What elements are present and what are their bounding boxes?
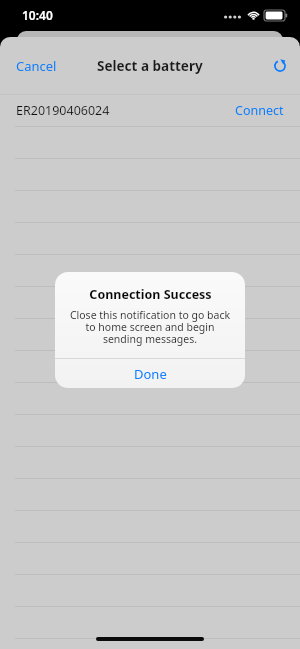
staticText: Done <box>134 365 167 383</box>
button[interactable]: Done <box>55 359 245 388</box>
staticText: Connection Success <box>89 286 212 303</box>
staticText: Select a battery <box>97 57 203 75</box>
button[interactable]: Refresh <box>260 48 300 84</box>
staticText: 10:40 <box>22 7 53 23</box>
staticText: ER20190406024 <box>16 102 110 119</box>
staticText: Close this notification to go back to ho… <box>69 308 231 346</box>
staticText: Connect <box>235 102 284 119</box>
staticText: Cancel <box>16 57 57 75</box>
button[interactable]: ER20190406024 <box>0 95 300 126</box>
button[interactable]: Cancel <box>0 47 73 85</box>
